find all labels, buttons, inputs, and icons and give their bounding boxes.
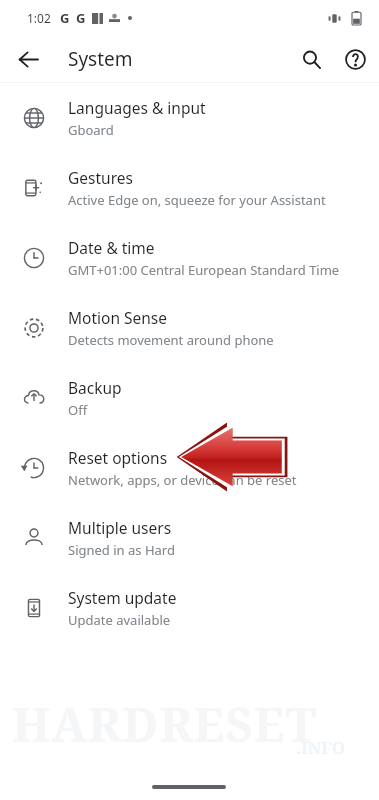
staticText: G [60,9,70,27]
staticText: 1:02 [27,10,51,26]
button[interactable]: Motion Sense [0,293,379,363]
staticText: Detects movement around phone [68,331,274,349]
button[interactable]: Languages & input [0,83,379,153]
button[interactable]: Back [9,40,47,78]
staticText: .INFO [296,736,346,759]
button[interactable]: Multiple users [0,503,379,573]
staticText: Off [68,401,88,419]
button[interactable]: Reset options [0,433,379,503]
staticText: Motion Sense [68,307,168,328]
staticText: Multiple users [68,517,172,538]
staticText: Gestures [68,167,133,188]
staticText: Date & time [68,237,155,258]
staticText: Signed in as Hard [68,541,175,559]
staticText: HARDRESET [12,692,318,756]
staticText: System update [68,587,177,608]
staticText: Backup [68,377,122,398]
button[interactable]: Backup [0,363,379,433]
staticText: Active Edge on, squeeze for your Assista… [68,191,326,209]
staticText: Network, apps, or device can be reset [68,471,297,489]
staticText: Reset options [68,447,168,468]
staticText: GMT+01:00 Central European Standard Time [68,261,340,279]
button[interactable]: Gestures [0,153,379,223]
button[interactable]: Date & time [0,223,379,293]
staticText: Gboard [68,121,114,139]
staticText: G [76,9,86,27]
button[interactable]: Help [335,39,375,79]
button[interactable]: Search [291,39,331,79]
staticText: System [68,46,133,72]
button[interactable]: System update [0,573,379,643]
staticText: Update available [68,611,171,629]
staticText: Languages & input [68,97,206,118]
